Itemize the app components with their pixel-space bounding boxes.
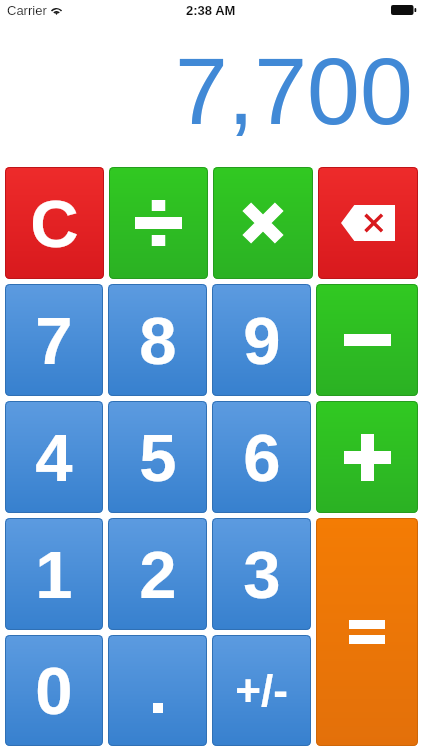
staticText: 7,700 <box>175 38 413 144</box>
staticText: 4 <box>35 420 73 495</box>
button[interactable]: 3 <box>212 518 311 630</box>
button[interactable]: C <box>5 167 104 279</box>
staticText: 8 <box>139 303 177 378</box>
staticText: 2:38 AM <box>186 3 236 18</box>
button[interactable]: Decimal point <box>108 635 207 746</box>
button[interactable]: Backspace <box>318 167 418 279</box>
button[interactable]: 0 <box>5 635 103 746</box>
button[interactable]: 6 <box>212 401 311 513</box>
button[interactable]: Divide <box>109 167 208 279</box>
staticText: 5 <box>139 420 177 495</box>
staticText: 1 <box>35 537 73 612</box>
button[interactable]: 2 <box>108 518 207 630</box>
staticText: 7 <box>35 303 73 378</box>
button[interactable]: 7 <box>5 284 103 396</box>
button[interactable]: 4 <box>5 401 103 513</box>
staticText: 9 <box>243 303 281 378</box>
staticText: 0 <box>35 653 73 728</box>
button[interactable]: 1 <box>5 518 103 630</box>
staticText: 2 <box>139 537 177 612</box>
staticText: C <box>30 186 79 261</box>
button[interactable]: 8 <box>108 284 207 396</box>
button[interactable]: 9 <box>212 284 311 396</box>
button[interactable]: Equals <box>316 518 418 746</box>
button[interactable]: +/- <box>212 635 311 746</box>
staticText: Carrier <box>7 3 47 18</box>
button[interactable]: Plus <box>316 401 418 513</box>
button[interactable]: Minus <box>316 284 418 396</box>
button[interactable]: 5 <box>108 401 207 513</box>
button[interactable]: Multiply <box>213 167 313 279</box>
staticText: +/- <box>235 666 288 715</box>
staticText: 6 <box>243 420 281 495</box>
staticText: 3 <box>243 537 281 612</box>
